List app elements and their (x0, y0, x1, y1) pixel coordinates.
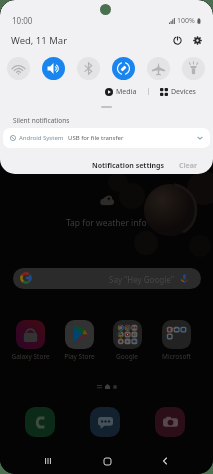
button[interactable]: Settings (190, 33, 204, 47)
button[interactable]: Notification settings (89, 159, 168, 172)
button[interactable]: Media (102, 86, 140, 98)
button[interactable]: Recents (37, 450, 59, 472)
button[interactable]: Flashlight (182, 57, 205, 80)
button[interactable]: Messages (90, 407, 120, 437)
staticText: Galaxy Store (11, 352, 50, 361)
staticText: Tap for weather info (66, 217, 147, 229)
button[interactable]: Google (103, 320, 151, 361)
staticText: Devices (171, 87, 196, 97)
staticText: Say "Hey Google" (109, 274, 174, 285)
staticText: Wed, 11 Mar (11, 34, 68, 47)
button[interactable]: Devices (157, 86, 199, 98)
staticText: Play Store (64, 352, 95, 361)
button[interactable]: Auto rotate (112, 57, 135, 80)
button[interactable]: Back (154, 450, 176, 472)
staticText: Google (116, 352, 138, 361)
staticText: Android System (19, 134, 64, 142)
staticText: Silent notifications (13, 116, 70, 125)
button[interactable]: Power (170, 33, 184, 47)
staticText: 100% (177, 16, 195, 26)
button[interactable]: Sound (42, 57, 65, 80)
button[interactable]: Airplane mode (147, 57, 170, 80)
button[interactable]: Clear (176, 159, 201, 172)
staticText: USB for file transfer (68, 134, 124, 142)
staticText: Microsoft (162, 352, 191, 361)
staticText: Media (116, 87, 137, 97)
button[interactable]: Phone (25, 407, 55, 437)
button[interactable]: Wi-Fi (7, 57, 30, 80)
button[interactable]: Bluetooth (77, 57, 100, 80)
staticText: 10:00 (12, 15, 33, 26)
button[interactable]: Home (96, 450, 118, 472)
button[interactable]: Play Store (55, 320, 103, 361)
button[interactable]: Tap for weather info (0, 192, 213, 229)
button[interactable]: Say "Hey Google" (13, 268, 201, 289)
button[interactable]: Galaxy Store (6, 320, 54, 361)
button[interactable]: Android System (3, 128, 210, 148)
button[interactable]: Camera (155, 407, 185, 437)
button[interactable]: Microsoft (152, 320, 200, 361)
